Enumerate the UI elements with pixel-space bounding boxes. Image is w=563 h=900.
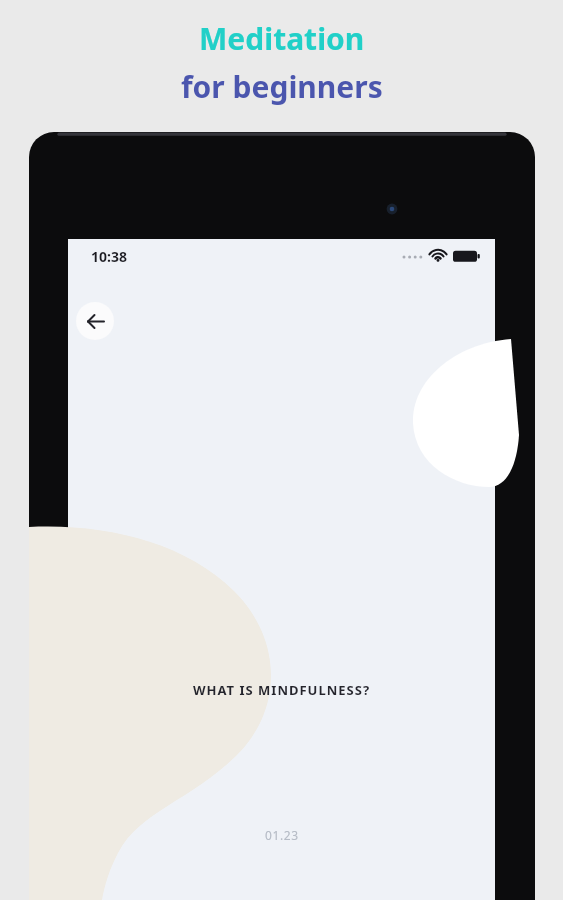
button[interactable]: Back: [76, 302, 114, 340]
staticText: 10:38: [91, 247, 127, 266]
staticText: Meditation: [199, 18, 365, 59]
staticText: 01.23: [265, 827, 299, 843]
staticText: WHAT IS MINDFULNESS?: [193, 681, 371, 699]
staticText: for beginners: [181, 66, 383, 107]
